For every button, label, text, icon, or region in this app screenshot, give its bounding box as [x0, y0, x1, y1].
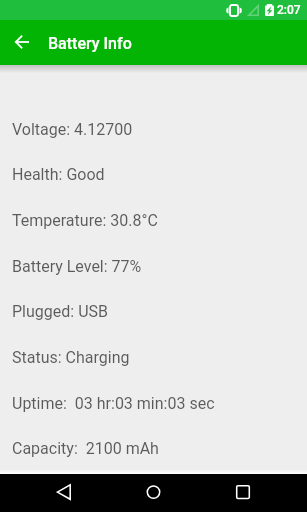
staticText: Battery Level: 77% — [12, 257, 142, 276]
staticText: Uptime: 03 hr:03 min:03 sec — [12, 394, 215, 413]
staticText: Health: Good — [12, 165, 105, 184]
staticText: Capacity: 2100 mAh — [12, 439, 159, 458]
button[interactable]: Recent apps — [205, 474, 307, 512]
staticText: Status: Charging — [12, 348, 130, 367]
staticText: 2:07 — [277, 3, 301, 17]
button[interactable]: Back — [4, 20, 40, 65]
button[interactable]: Back — [0, 474, 103, 512]
staticText: Plugged: USB — [12, 302, 108, 321]
button[interactable]: Home — [103, 474, 205, 512]
staticText: Voltage: 4.12700 — [12, 120, 133, 139]
staticText: Temperature: 30.8°C — [12, 211, 158, 230]
staticText: Battery Info — [48, 34, 132, 53]
